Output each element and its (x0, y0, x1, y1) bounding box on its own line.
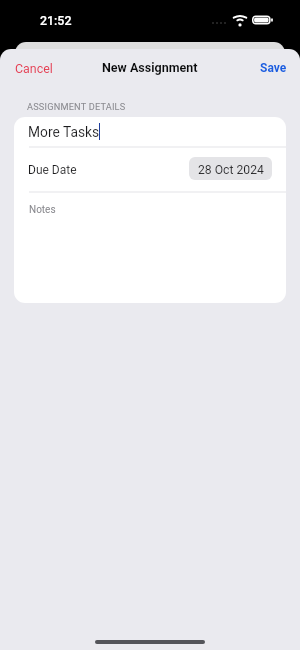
button[interactable]: Due Date (14, 148, 286, 191)
staticText: 28 Oct 2024 (198, 163, 264, 177)
staticText: New Assignment (102, 60, 198, 75)
other: Cellular signal (212, 22, 226, 24)
staticText: 21:52 (40, 13, 72, 28)
staticText: Notes (29, 204, 56, 216)
button[interactable]: 28 Oct 2024 (189, 157, 272, 180)
other: Battery (252, 15, 275, 25)
other: Wi-Fi (233, 15, 247, 26)
staticText: Save (260, 61, 287, 75)
button[interactable]: Cancel (0, 54, 66, 83)
staticText: Cancel (15, 61, 53, 76)
button[interactable]: Notes (14, 193, 286, 303)
staticText: More Tasks (28, 124, 100, 140)
staticText: Due Date (28, 163, 77, 177)
button[interactable]: More Tasks (14, 117, 286, 146)
staticText: ASSIGNMENT DETAILS (27, 101, 126, 112)
button[interactable]: Save (246, 54, 300, 82)
